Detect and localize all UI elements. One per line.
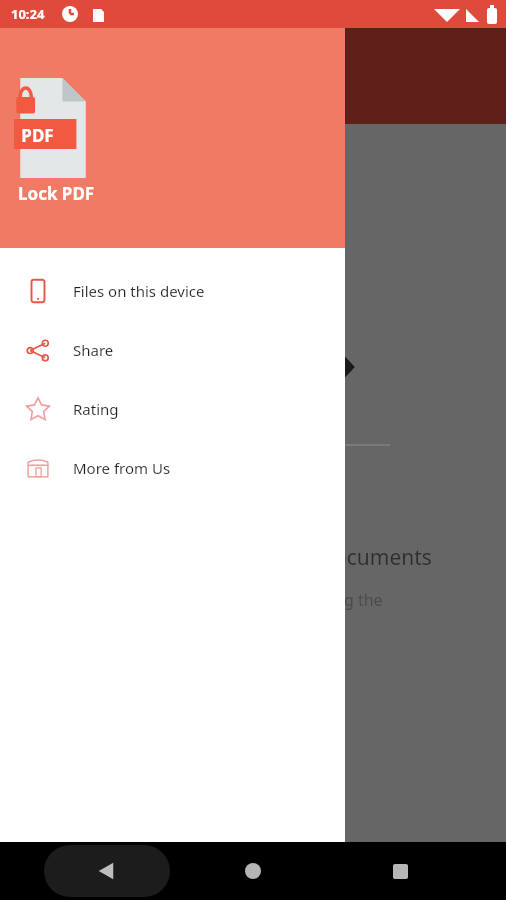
staticText: PDF [21, 124, 54, 147]
button[interactable]: Recent apps [376, 847, 424, 895]
staticText: Share [73, 340, 114, 360]
staticText: 10:24 [11, 5, 45, 23]
button[interactable]: Rating [0, 379, 345, 438]
other: Back [94, 858, 120, 884]
button[interactable]: Files on this device [0, 261, 345, 320]
staticText: Rating [73, 399, 119, 419]
button[interactable]: Back [44, 845, 170, 897]
button[interactable]: More from Us [0, 438, 345, 497]
staticText: Lock PDF [18, 182, 95, 205]
staticText: More from Us [73, 458, 171, 478]
button[interactable]: Home [229, 847, 277, 895]
staticText: Files on this device [73, 281, 205, 301]
staticText: ocuments [334, 543, 432, 572]
staticText: ng the [334, 589, 383, 611]
button[interactable]: Share [0, 320, 345, 379]
